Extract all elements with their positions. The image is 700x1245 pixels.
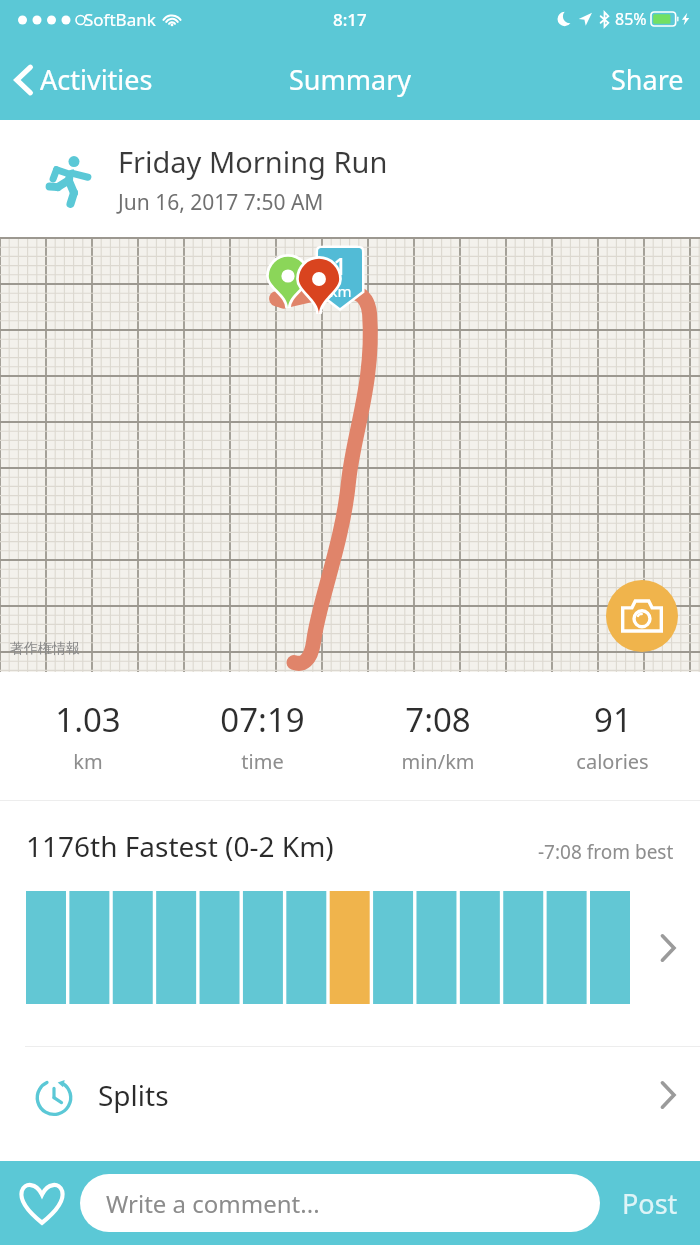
staticText: 1176th Fastest (0-2 Km) (26, 827, 334, 865)
staticText: Summary (289, 61, 412, 98)
button[interactable]: Post (600, 1173, 700, 1234)
staticText: Splits (98, 1076, 169, 1114)
staticText: Activities (40, 61, 153, 98)
staticText: SoftBank (84, 8, 156, 31)
staticText: 8:17 (333, 8, 367, 31)
staticText: 07:19 (220, 697, 305, 742)
staticText: 1.03 (55, 697, 121, 742)
staticText: Jun 16, 2017 7:50 AM (118, 188, 324, 217)
staticText: 85% (615, 8, 647, 30)
staticText: Friday Morning Run (118, 142, 388, 181)
staticText: -7:08 from best (538, 839, 674, 865)
button[interactable]: 1176th Fastest (0-2 Km) (0, 801, 700, 1046)
staticText: 7:08 (405, 697, 471, 742)
staticText: 1 (333, 250, 347, 281)
staticText: 91 (594, 697, 632, 742)
staticText: 著作権情報 (10, 640, 80, 658)
staticText: km (329, 281, 352, 301)
staticText: min/km (401, 748, 475, 775)
button[interactable]: Share (595, 51, 700, 108)
button[interactable]: Activities (0, 53, 167, 106)
button[interactable]: Like (14, 1175, 70, 1231)
staticText: calories (576, 748, 649, 775)
staticText: km (73, 748, 103, 775)
button[interactable]: Add photo (606, 580, 678, 652)
button[interactable]: Write a comment... (80, 1174, 600, 1232)
staticText: Write a comment... (106, 1187, 320, 1220)
staticText: Share (611, 61, 684, 98)
staticText: time (241, 748, 284, 775)
button[interactable]: Splits (0, 1047, 700, 1143)
staticText: Post (622, 1185, 678, 1222)
